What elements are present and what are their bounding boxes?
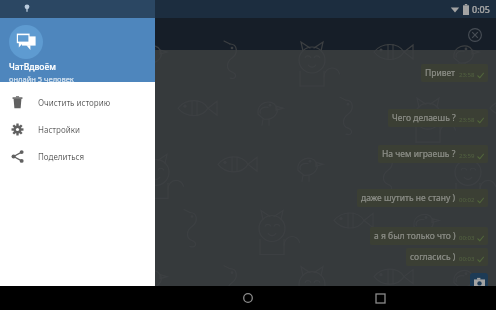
button[interactable]: Close [466,26,484,44]
button[interactable]: Настройки [0,116,155,143]
button[interactable]: согласись ) [406,248,488,266]
button[interactable]: Привет [421,64,488,82]
button[interactable]: На чем играешь ? [378,145,488,163]
button[interactable]: даже шутить не стану ) [357,189,488,207]
staticText: 00:03 [459,234,475,242]
staticText: 00:02 [459,196,475,204]
button[interactable]: Очистить историю [0,89,155,116]
button[interactable]: Чего делаешь ? [388,109,488,127]
staticText: Поделиться [38,151,85,162]
button[interactable]: Home [233,286,263,310]
button[interactable]: Profile [9,25,43,59]
staticText: 0:05 [472,3,490,15]
staticText: 23:58 [459,71,475,79]
button[interactable]: Recents [365,286,395,310]
staticText: Чего делаешь ? [392,112,456,124]
staticText: Очистить историю [38,97,111,108]
staticText: 23:58 [459,116,475,124]
button[interactable]: Camera [470,273,488,291]
staticText: ЧатВдвоём [9,61,56,73]
staticText: Настройки [38,124,80,135]
staticText: 00:03 [459,255,475,263]
staticText: согласись ) [410,251,456,263]
staticText: На чем играешь ? [382,148,456,160]
button[interactable]: Поделиться [0,143,155,170]
staticText: а я был только что ) [374,230,456,242]
staticText: Привет [425,67,456,79]
staticText: 23:59 [459,152,475,160]
staticText: даже шутить не стану ) [361,192,456,204]
staticText: онлайн 5 человек [9,74,74,84]
button[interactable]: а я был только что ) [370,227,488,245]
